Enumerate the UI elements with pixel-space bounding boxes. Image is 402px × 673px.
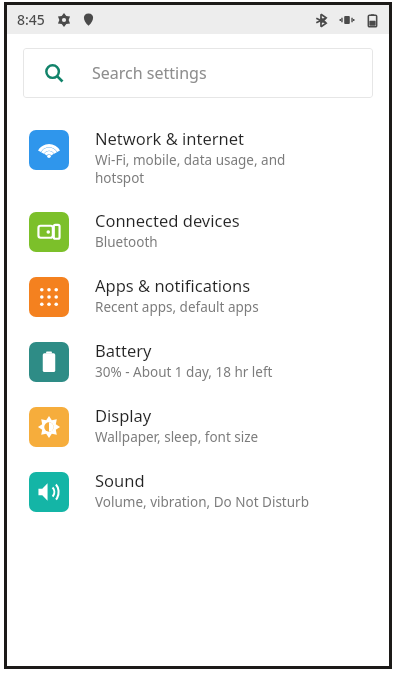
staticText: Sound	[95, 469, 145, 491]
other: Battery	[37, 350, 61, 374]
staticText: Network & internet	[95, 127, 245, 149]
button[interactable]: Sound	[7, 458, 389, 523]
staticText: Display	[95, 404, 152, 426]
staticText: Wi-Fi, mobile, data usage, and hotspot	[95, 151, 286, 187]
staticText: Connected devices	[95, 209, 240, 231]
staticText: Bluetooth	[95, 233, 158, 251]
other: Apps and notifications	[37, 285, 61, 309]
button[interactable]: Search settings	[23, 48, 373, 98]
staticText: Search settings	[92, 62, 207, 84]
button[interactable]: Battery	[7, 328, 389, 393]
staticText: Recent apps, default apps	[95, 298, 259, 316]
button[interactable]: Network and internet	[7, 116, 389, 198]
staticText: Battery	[95, 339, 152, 361]
button[interactable]: Apps and notifications	[7, 263, 389, 328]
other: Network and internet	[37, 138, 61, 162]
other: Display	[37, 415, 61, 439]
staticText: 30% - About 1 day, 18 hr left	[95, 363, 273, 381]
staticText: Volume, vibration, Do Not Disturb	[95, 493, 309, 511]
staticText: 8:45	[17, 10, 45, 29]
other: Sound	[37, 480, 61, 504]
button[interactable]: Display	[7, 393, 389, 458]
other: Connected devices	[37, 220, 61, 244]
staticText: Apps & notifications	[95, 274, 251, 296]
button[interactable]: Connected devices	[7, 198, 389, 263]
staticText: Wallpaper, sleep, font size	[95, 428, 259, 446]
